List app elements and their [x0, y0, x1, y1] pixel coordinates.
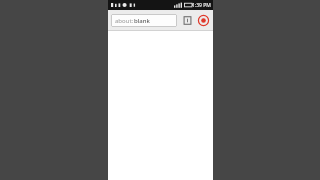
button[interactable]: Tabs: [180, 13, 194, 27]
staticText: blank: [134, 17, 150, 25]
button[interactable]: Record: [196, 13, 210, 27]
button[interactable]: about:: [111, 14, 177, 27]
staticText: about:: [115, 17, 134, 25]
staticText: 1:39 PM: [192, 2, 211, 9]
